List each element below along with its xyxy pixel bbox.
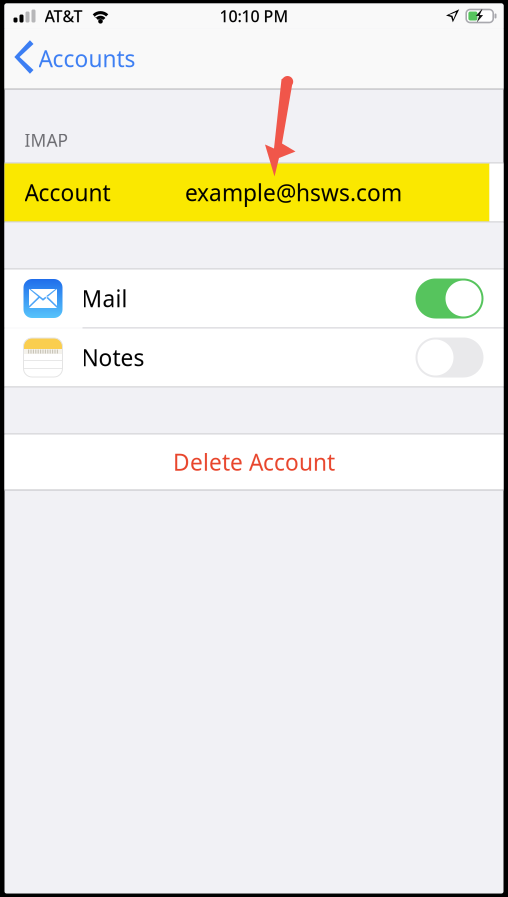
button[interactable]: Mail bbox=[4, 269, 503, 327]
staticText: IMAP bbox=[24, 128, 67, 151]
button[interactable]: Notes bbox=[4, 328, 503, 386]
staticText: Accounts bbox=[38, 43, 135, 73]
staticText: Mail bbox=[81, 283, 127, 313]
staticText: Account bbox=[24, 177, 110, 207]
staticText: example@hsws.com bbox=[185, 177, 402, 207]
staticText: Notes bbox=[81, 342, 144, 372]
button[interactable]: Delete Account bbox=[4, 434, 503, 489]
staticText: Delete Account bbox=[173, 447, 335, 477]
button[interactable]: Account bbox=[4, 163, 503, 221]
staticText: AT&T bbox=[44, 5, 82, 27]
button[interactable]: Accounts bbox=[4, 28, 147, 88]
staticText: 10:10 PM bbox=[219, 5, 288, 27]
